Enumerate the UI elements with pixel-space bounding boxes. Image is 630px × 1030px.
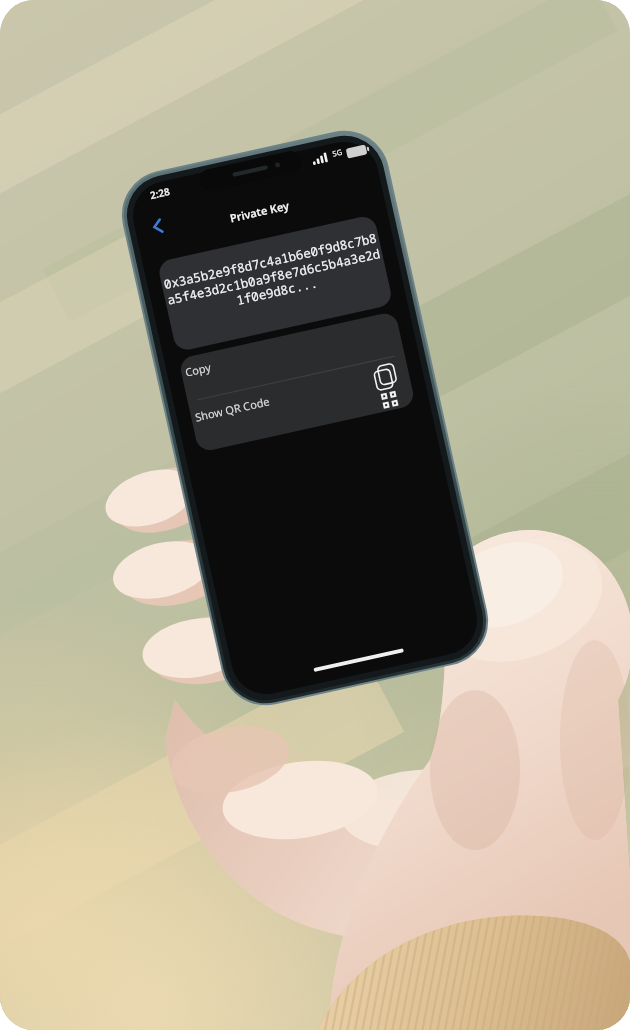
button[interactable]: Back	[142, 211, 173, 242]
button[interactable]: Show QR Code	[180, 345, 419, 442]
staticText: 2:28	[149, 184, 171, 202]
staticText: Show QR Code	[194, 393, 271, 425]
staticText: 5G	[331, 147, 343, 159]
staticText: 0x3a5b2e9f8d7c4a1b6e0f9d8c7b8a5f4e3d2c1b…	[160, 229, 387, 323]
staticText: Copy	[184, 359, 212, 380]
button[interactable]: Copy	[171, 302, 409, 395]
staticText: Private Key	[228, 197, 291, 225]
